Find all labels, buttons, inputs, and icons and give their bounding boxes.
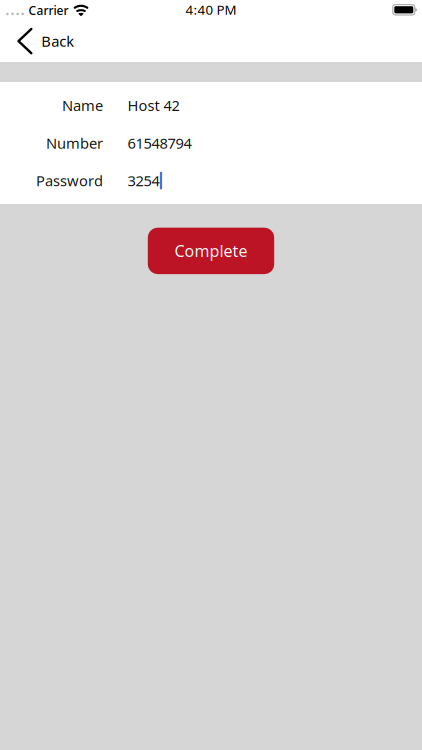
staticText: Back xyxy=(41,31,74,51)
button[interactable]: Back xyxy=(0,22,90,62)
staticText: 61548794 xyxy=(127,133,191,153)
staticText: Complete xyxy=(174,240,247,261)
button[interactable]: Number xyxy=(0,124,422,162)
staticText: Password xyxy=(36,171,103,190)
button[interactable]: Complete xyxy=(148,228,274,274)
staticText: 3254 xyxy=(127,171,159,190)
staticText: Host 42 xyxy=(127,96,179,115)
staticText: Number xyxy=(46,133,103,153)
button[interactable]: Name xyxy=(0,87,422,124)
staticText: Name xyxy=(62,96,103,115)
staticText: 4:40 PM xyxy=(185,1,236,18)
button[interactable]: Password xyxy=(0,162,422,199)
staticText: Carrier xyxy=(28,2,68,18)
